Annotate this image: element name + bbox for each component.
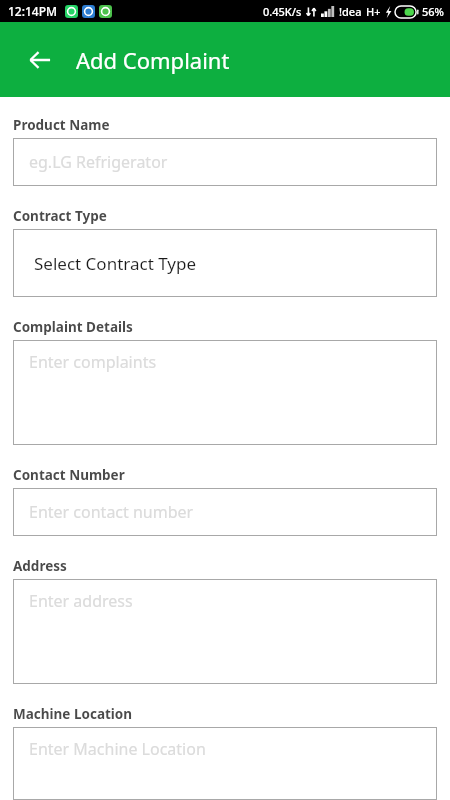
staticText: 12:14PM (8, 3, 58, 19)
staticText: Address (13, 557, 67, 575)
staticText: Select Contract Type (34, 252, 197, 275)
staticText: Complaint Details (13, 318, 133, 336)
staticText: Contract Type (13, 207, 107, 225)
button[interactable]: Enter Machine Location (13, 727, 437, 800)
button[interactable]: Back (17, 37, 63, 83)
button[interactable]: Enter complaints (13, 340, 437, 445)
staticText: 0.45K/s (263, 4, 302, 19)
staticText: Add Complaint (76, 45, 230, 75)
button[interactable]: eg.LG Refrigerator (13, 138, 437, 186)
staticText: Enter complaints (29, 351, 157, 373)
button[interactable]: Enter address (13, 579, 437, 684)
staticText: eg.LG Refrigerator (29, 151, 168, 173)
button[interactable]: Enter contact number (13, 488, 437, 536)
button[interactable]: Select Contract Type (13, 229, 437, 297)
staticText: Enter address (29, 590, 133, 612)
staticText: !dea (339, 4, 362, 19)
staticText: H+ (366, 4, 381, 19)
staticText: 56% (422, 4, 444, 19)
staticText: Contact Number (13, 466, 125, 484)
staticText: Enter Machine Location (29, 738, 206, 760)
staticText: Product Name (13, 116, 110, 134)
staticText: Enter contact number (29, 501, 194, 523)
staticText: Machine Location (13, 705, 133, 723)
